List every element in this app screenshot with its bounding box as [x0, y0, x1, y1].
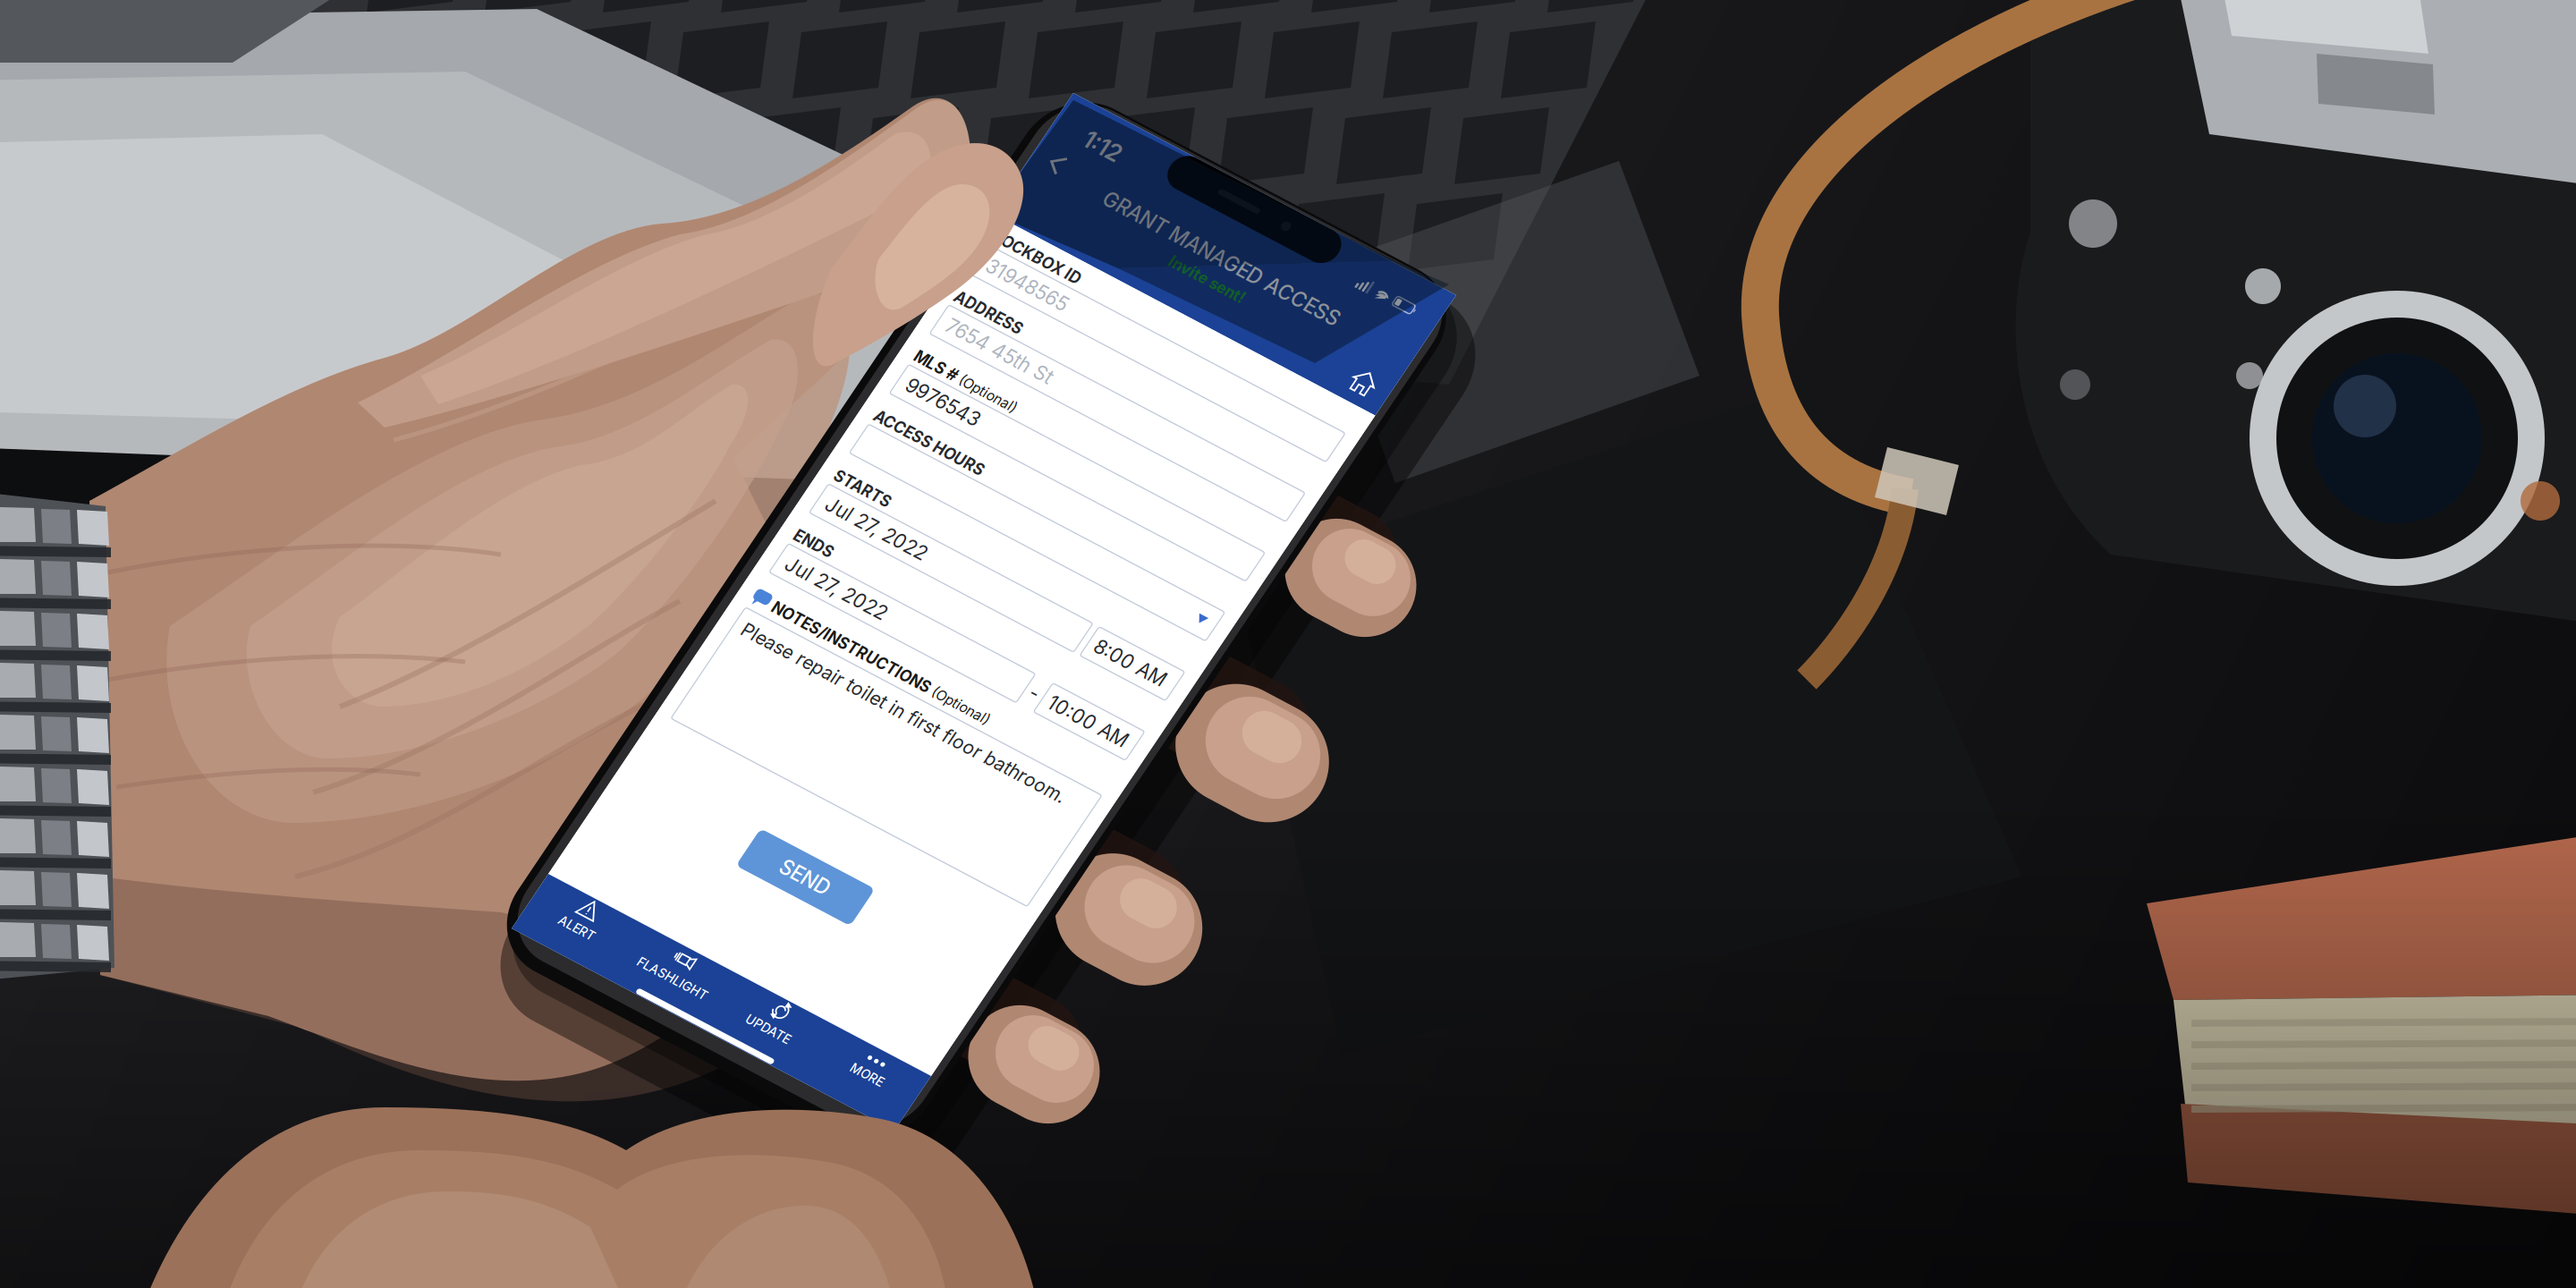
staticText: GRANT MANAGED ACCESS — [1139, 140, 1343, 158]
staticText: SEND — [1220, 678, 1262, 696]
staticText: 9976543 — [1092, 326, 1155, 344]
button[interactable]: SEND — [1191, 671, 1291, 703]
staticText: Please repair toilet in first floor bath… — [1092, 539, 1375, 557]
staticText: ACCESS HOURS — [1085, 359, 1180, 373]
button[interactable]: FLASHLIGHT — [1157, 772, 1241, 803]
staticText: Jul 27, 2022 — [1092, 430, 1179, 448]
staticText: 10:00 AM — [1322, 482, 1390, 500]
staticText: LOCKBOX ID — [1085, 203, 1159, 218]
staticText: ALERT — [1100, 791, 1130, 803]
staticText: ENDS — [1085, 463, 1118, 477]
staticText: FLASHLIGHT — [1169, 791, 1229, 803]
staticText: STARTS — [1085, 411, 1133, 425]
staticText: Invite sent! — [1208, 160, 1274, 175]
staticText: 7654 45th St — [1092, 275, 1183, 293]
staticText: NOTES/INSTRUCTIONS (Optional) — [1102, 517, 1292, 531]
button[interactable]: Property home — [1365, 168, 1409, 192]
button[interactable]: 31948565 — [1085, 219, 1397, 244]
button[interactable]: Please repair toilet in first floor bath… — [1085, 534, 1397, 631]
staticText: 1:12 — [1100, 106, 1131, 128]
button[interactable]: Jul 27, 2022 — [1085, 479, 1301, 504]
button[interactable]: Back — [1073, 132, 1113, 156]
staticText: Jul 27, 2022 — [1092, 482, 1179, 500]
button[interactable]: 8:00 AM — [1322, 427, 1397, 452]
staticText: ADDRESS — [1085, 255, 1143, 270]
staticText: UPDATE — [1264, 791, 1302, 803]
button[interactable]: Jul 27, 2022 — [1085, 427, 1317, 452]
button[interactable]: 7654 45th St — [1085, 271, 1397, 296]
staticText: 8:00 AM — [1327, 430, 1388, 448]
staticText: 31948565 — [1092, 223, 1162, 241]
staticText: MLS # (Optional) — [1085, 307, 1174, 321]
button[interactable]: UPDATE — [1241, 772, 1325, 803]
button[interactable]: MORE — [1325, 777, 1409, 798]
button[interactable]: 10:00 AM — [1317, 479, 1397, 504]
button[interactable]: ALERT — [1073, 772, 1157, 803]
button[interactable]: Access hours — [1085, 375, 1397, 400]
button[interactable]: 9976543 — [1085, 323, 1397, 348]
